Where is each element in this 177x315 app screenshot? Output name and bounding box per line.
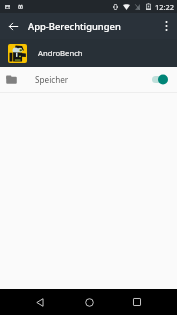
staticText: Speicher xyxy=(35,74,69,85)
staticText: App-Berechtigungen xyxy=(28,20,121,33)
staticText: AndroBench xyxy=(38,48,83,58)
button[interactable]: Speicher xyxy=(0,67,177,92)
button[interactable]: More options xyxy=(156,13,177,39)
button[interactable]: Back xyxy=(27,289,53,315)
button[interactable]: Home xyxy=(76,289,102,315)
button[interactable]: Recent apps xyxy=(124,289,150,315)
staticText: 12:22 xyxy=(155,2,174,12)
button[interactable]: Back xyxy=(0,13,27,39)
